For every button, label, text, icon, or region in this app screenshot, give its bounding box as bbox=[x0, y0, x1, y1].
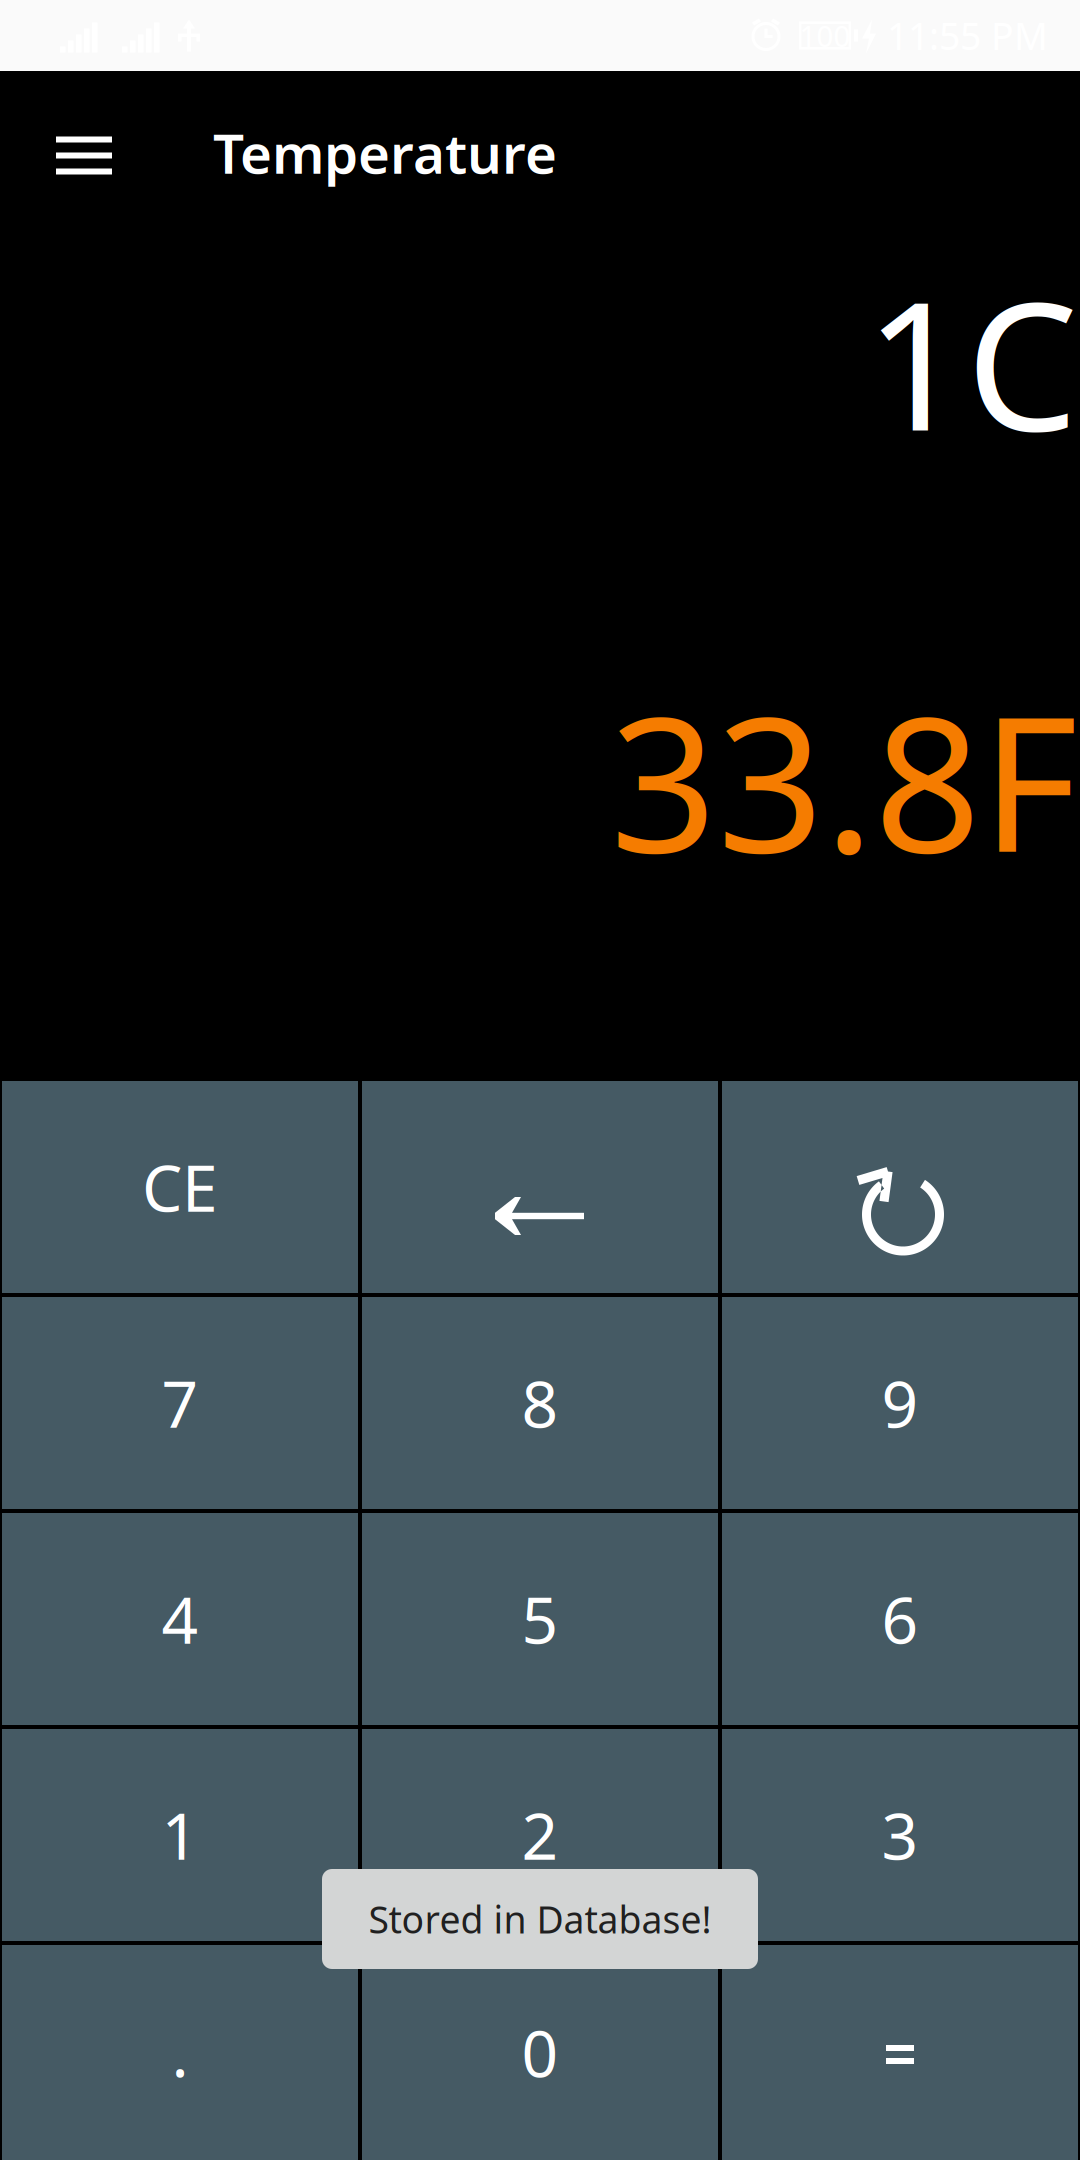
staticText: 1 bbox=[161, 1792, 198, 1877]
button[interactable]: 0 bbox=[362, 1945, 718, 2160]
button[interactable]: 8 bbox=[362, 1297, 718, 1509]
staticText: 6 bbox=[881, 1576, 918, 1661]
staticText: 4 bbox=[161, 1576, 198, 1661]
staticText: 33.8F bbox=[610, 656, 1078, 904]
staticText: Stored in Database! bbox=[368, 1894, 711, 1944]
staticText: 3 bbox=[881, 1792, 918, 1877]
staticText: 9 bbox=[881, 1360, 918, 1445]
staticText: Temperature bbox=[213, 116, 557, 189]
staticText: 1C bbox=[865, 244, 1078, 479]
button[interactable]: 1 bbox=[2, 1729, 358, 1941]
button[interactable] bbox=[2, 1081, 358, 1293]
staticText: 2 bbox=[521, 1792, 558, 1877]
button[interactable]: 7 bbox=[2, 1297, 358, 1509]
staticText: 7 bbox=[161, 1360, 198, 1445]
staticText: 8 bbox=[521, 1360, 558, 1445]
button[interactable]: 9 bbox=[722, 1297, 1078, 1509]
button[interactable]: Equals bbox=[722, 1945, 1078, 2160]
button[interactable]: 5 bbox=[362, 1513, 718, 1725]
button[interactable]: 4 bbox=[2, 1513, 358, 1725]
button[interactable]: Backspace bbox=[362, 1081, 718, 1293]
button[interactable]: 3 bbox=[722, 1729, 1078, 1941]
staticText: 5 bbox=[521, 1576, 558, 1661]
button[interactable]: Reset bbox=[722, 1081, 1078, 1293]
button[interactable]: . bbox=[2, 1945, 358, 2160]
staticText: . bbox=[171, 2010, 188, 2095]
staticText: CE bbox=[142, 1144, 218, 1229]
button[interactable]: 6 bbox=[722, 1513, 1078, 1725]
button[interactable]: 2 bbox=[362, 1729, 718, 1941]
staticText: 0 bbox=[521, 2010, 558, 2095]
button[interactable]: Menu bbox=[0, 71, 168, 216]
